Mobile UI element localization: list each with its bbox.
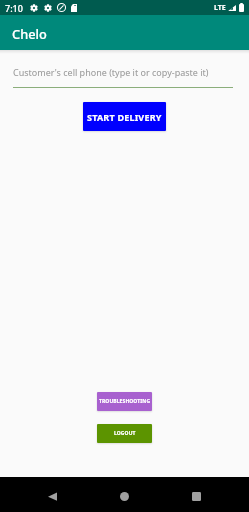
staticText: TROUBLESHOOTING: [99, 398, 151, 405]
button[interactable]: TROUBLESHOOTING: [97, 392, 152, 411]
staticText: Customer's cell phone (type it or copy-p…: [13, 66, 209, 78]
button[interactable]: Recent apps: [184, 484, 208, 508]
button[interactable]: Customer's cell phone (type it or copy-p…: [13, 66, 233, 88]
button[interactable]: Back: [40, 484, 64, 508]
staticText: START DELIVERY: [87, 111, 162, 123]
staticText: 7:10: [5, 2, 23, 14]
staticText: LTE: [214, 3, 226, 13]
staticText: LOGOUT: [114, 430, 136, 437]
button[interactable]: START DELIVERY: [83, 102, 166, 131]
button[interactable]: LOGOUT: [97, 424, 152, 443]
button[interactable]: Home: [112, 484, 136, 508]
staticText: Chelo: [12, 25, 47, 42]
